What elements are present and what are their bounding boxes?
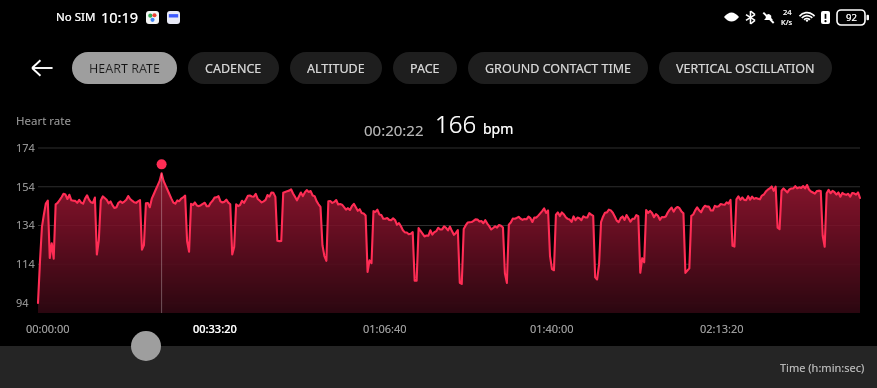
staticText: Heart rate [16, 113, 71, 129]
staticText: 01:40:00 [530, 321, 574, 336]
button[interactable]: Scrub position [131, 331, 161, 361]
button[interactable]: PACE [393, 52, 457, 84]
staticText: Time (h:min:sec) [780, 360, 865, 375]
staticText: PACE [410, 60, 440, 77]
staticText: 00:33:20 [193, 321, 237, 336]
staticText: GROUND CONTACT TIME [485, 60, 631, 77]
staticText: 92 [846, 11, 857, 24]
staticText: No SIM [56, 9, 96, 25]
staticText: 154 [16, 179, 35, 194]
button[interactable]: HEART RATE [72, 52, 177, 84]
staticText: 00:20:22 [364, 120, 424, 140]
staticText: CADENCE [205, 60, 262, 77]
button[interactable]: VERTICAL OSCILLATION [659, 52, 832, 84]
button[interactable]: GROUND CONTACT TIME [468, 52, 648, 84]
staticText: 24 [783, 7, 792, 17]
staticText: 166 [435, 107, 477, 140]
staticText: 02:13:20 [700, 321, 744, 336]
staticText: 174 [16, 140, 35, 155]
staticText: VERTICAL OSCILLATION [676, 60, 815, 77]
button[interactable]: Back [27, 53, 57, 83]
button[interactable]: ALTITUDE [290, 52, 382, 84]
staticText: bpm [483, 119, 514, 138]
staticText: 00:00:00 [26, 321, 70, 336]
button[interactable]: CADENCE [188, 52, 279, 84]
staticText: HEART RATE [89, 60, 160, 77]
staticText: K/s [781, 17, 793, 27]
staticText: 114 [16, 256, 35, 271]
staticText: 10:19 [101, 7, 139, 27]
staticText: 01:06:40 [363, 321, 407, 336]
staticText: 134 [16, 217, 35, 232]
staticText: 94 [16, 295, 29, 310]
staticText: ALTITUDE [307, 60, 365, 77]
